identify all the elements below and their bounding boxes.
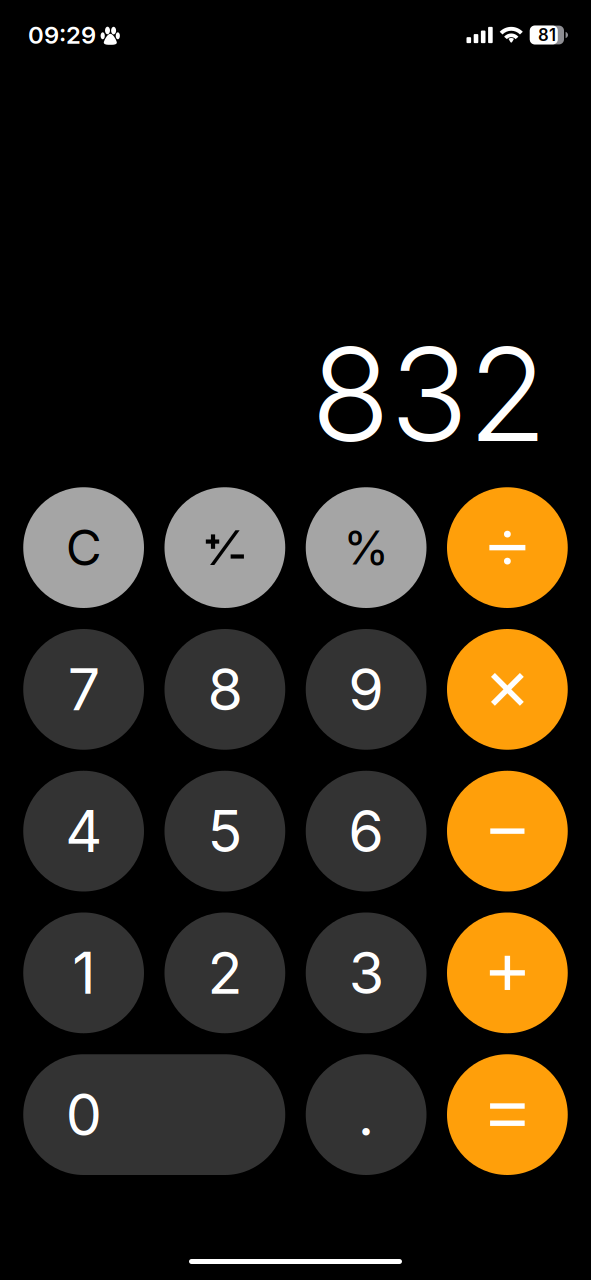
button[interactable]: [447, 912, 568, 1033]
button[interactable]: 7: [23, 629, 144, 750]
button[interactable]: [447, 487, 568, 608]
staticText: 832: [311, 316, 547, 472]
staticText: 81: [538, 25, 556, 45]
staticText: 6: [348, 796, 384, 866]
button[interactable]: 3: [306, 912, 427, 1033]
button[interactable]: 4: [23, 771, 144, 892]
staticText: 1: [72, 938, 95, 1008]
staticText: 4: [65, 796, 102, 866]
button[interactable]: 5: [164, 771, 285, 892]
button[interactable]: [447, 629, 568, 750]
staticText: C: [66, 518, 102, 577]
button[interactable]: 0: [23, 1054, 285, 1175]
button[interactable]: 1: [23, 912, 144, 1033]
button[interactable]: %: [306, 487, 427, 608]
button[interactable]: [447, 1054, 568, 1175]
button[interactable]: .: [306, 1054, 427, 1175]
staticText: 5: [207, 796, 242, 866]
button[interactable]: C: [23, 487, 144, 608]
button[interactable]: 8: [164, 629, 285, 750]
button[interactable]: 2: [164, 912, 285, 1033]
staticText: .: [358, 1080, 375, 1149]
staticText: 3: [349, 938, 384, 1008]
staticText: 7: [68, 655, 100, 724]
button[interactable]: [164, 487, 285, 608]
staticText: 0: [66, 1080, 102, 1149]
staticText: 8: [207, 655, 242, 724]
button[interactable]: [447, 771, 568, 892]
button[interactable]: 9: [306, 629, 427, 750]
button[interactable]: 6: [306, 771, 427, 892]
staticText: 09:29: [28, 20, 96, 49]
staticText: 2: [207, 938, 242, 1008]
staticText: %: [343, 519, 389, 576]
staticText: 9: [348, 655, 384, 724]
